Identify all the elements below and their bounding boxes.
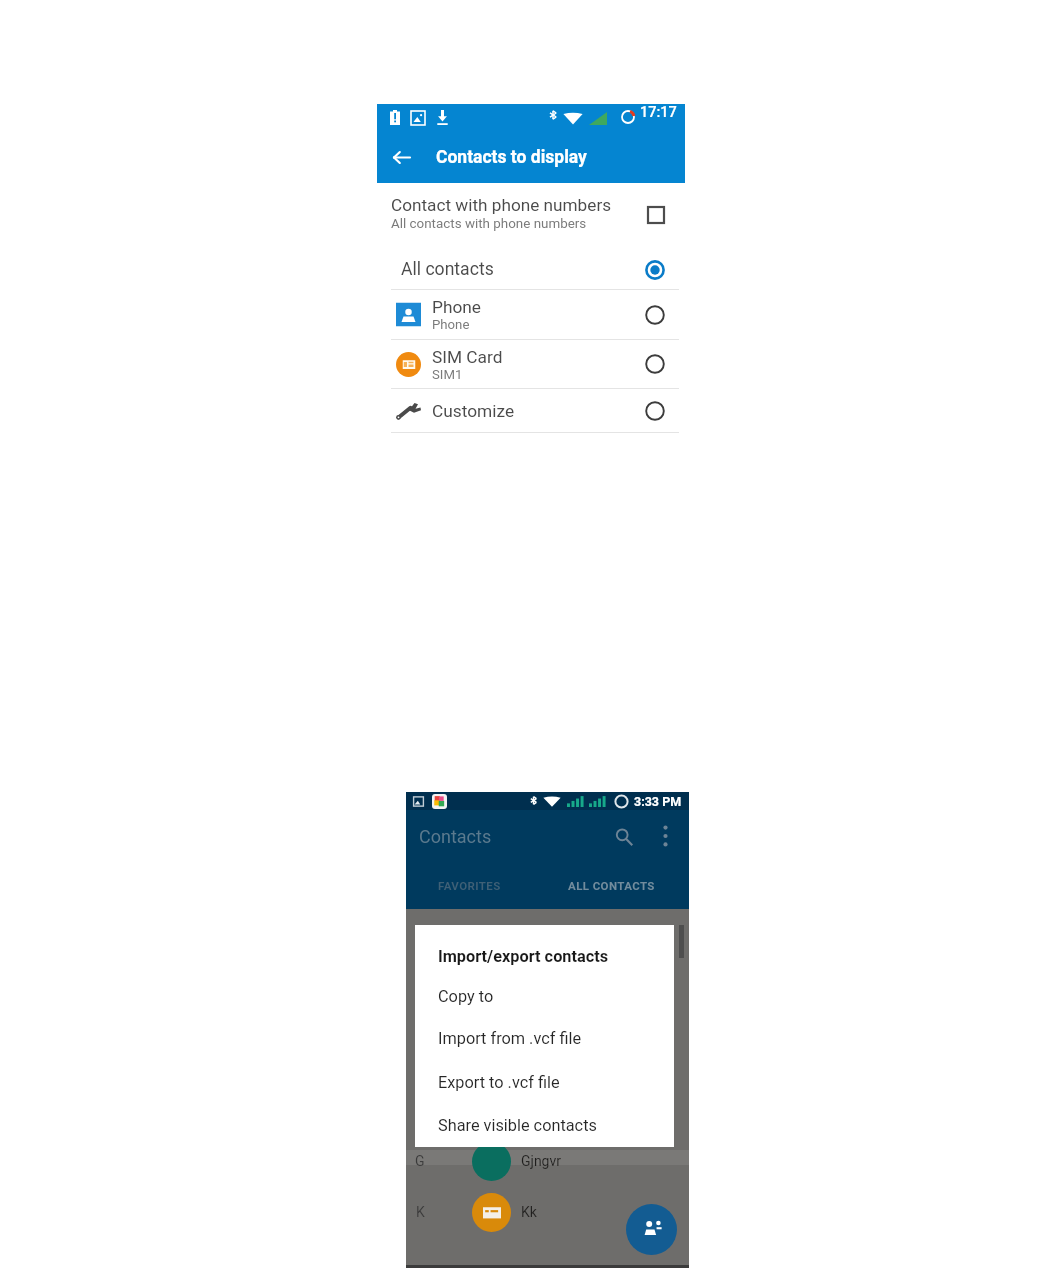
staticText: Export to .vcf file <box>438 1073 560 1092</box>
staticText: SIM Card <box>432 347 503 367</box>
button[interactable]: ALL CONTACTS <box>551 862 671 909</box>
button[interactable]: Copy to <box>415 984 674 1008</box>
staticText: FAVORITES <box>438 879 501 892</box>
staticText: Kk <box>521 1204 537 1220</box>
staticText: Phone <box>432 317 470 332</box>
button[interactable]: G <box>406 1141 689 1181</box>
button[interactable]: Export to .vcf file <box>415 1070 674 1094</box>
staticText: Import from .vcf file <box>438 1029 582 1048</box>
button[interactable]: K <box>406 1192 689 1232</box>
staticText: ALL CONTACTS <box>568 879 655 892</box>
button[interactable]: All contacts <box>377 250 685 289</box>
staticText: Contacts <box>419 826 492 847</box>
staticText: 3:33 PM <box>634 794 682 809</box>
staticText: Phone <box>432 297 482 317</box>
button[interactable]: Add contact <box>626 1204 677 1255</box>
button[interactable]: Share visible contacts <box>415 1113 674 1137</box>
staticText: Contact with phone numbers <box>391 195 612 215</box>
button[interactable]: Import/export contacts <box>415 944 674 968</box>
staticText: SIM1 <box>432 367 463 382</box>
staticText: G <box>415 1153 425 1169</box>
staticText: 17:17 <box>640 104 677 121</box>
staticText: Import/export contacts <box>438 947 609 966</box>
staticText: K <box>416 1204 425 1220</box>
staticText: Copy to <box>438 987 494 1006</box>
staticText: Gjngvr <box>521 1153 562 1169</box>
button[interactable]: Contact with phone numbers <box>377 183 685 250</box>
button[interactable]: Customize <box>377 389 685 432</box>
button[interactable]: SIM Card <box>377 340 685 388</box>
button[interactable]: Search <box>608 821 639 852</box>
staticText: All contacts with phone numbers <box>391 216 587 232</box>
button[interactable]: Back <box>384 140 418 174</box>
staticText: All contacts <box>401 259 645 280</box>
button[interactable]: Phone <box>377 290 685 339</box>
button[interactable]: More options <box>650 821 680 851</box>
staticText: Share visible contacts <box>438 1116 597 1135</box>
staticText: Contacts to display <box>436 147 587 168</box>
button[interactable]: Import from .vcf file <box>415 1026 674 1050</box>
button[interactable]: FAVORITES <box>414 862 524 909</box>
staticText: Customize <box>432 401 515 421</box>
